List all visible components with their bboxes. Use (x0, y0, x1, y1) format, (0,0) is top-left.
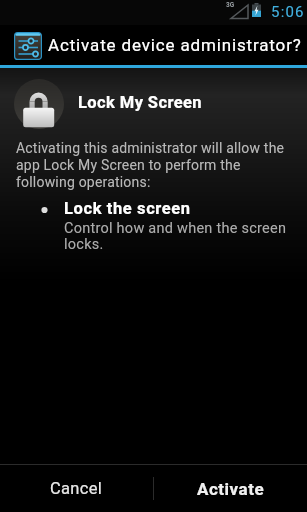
staticText: Activate device administrator? (48, 35, 302, 55)
button[interactable]: Cancel (0, 465, 153, 512)
staticText: Activate (197, 479, 265, 499)
button[interactable]: Activate (154, 465, 307, 512)
staticText: 3G (226, 1, 235, 9)
staticText: Lock My Screen (78, 93, 202, 112)
staticText: Control how and when the screen locks. (64, 220, 287, 252)
staticText: Activating this administrator will allow… (16, 140, 285, 191)
staticText: Lock the screen (64, 199, 191, 218)
staticText: Cancel (50, 479, 103, 498)
staticText: 5:06 (271, 3, 305, 21)
